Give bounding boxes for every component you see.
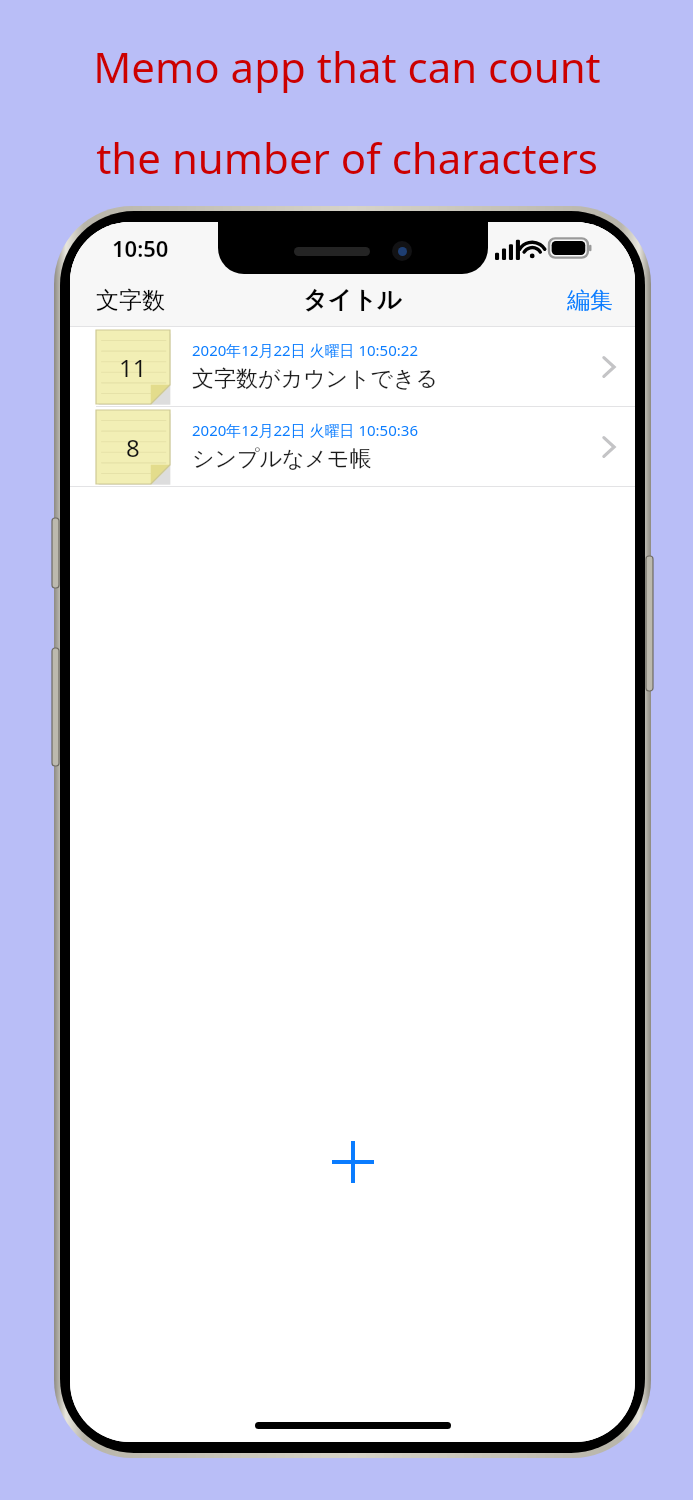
staticText: 11 bbox=[119, 351, 147, 384]
staticText: 2020年12月22日 火曜日 10:50:22 bbox=[192, 340, 418, 360]
staticText: 編集 bbox=[567, 286, 613, 315]
staticText: 10:50 bbox=[112, 233, 169, 263]
button[interactable]: 編集 bbox=[545, 278, 635, 323]
staticText: シンプルなメモ帳 bbox=[192, 445, 372, 473]
button[interactable]: Add memo bbox=[322, 1131, 384, 1193]
staticText: 8 bbox=[126, 431, 140, 464]
staticText: 文字数がカウントできる bbox=[192, 365, 439, 393]
staticText: the number of characters bbox=[96, 129, 598, 186]
button[interactable]: 8 bbox=[70, 407, 635, 486]
staticText: 2020年12月22日 火曜日 10:50:36 bbox=[192, 420, 418, 440]
staticText: タイトル bbox=[303, 285, 402, 315]
button[interactable]: 文字数 bbox=[70, 278, 191, 323]
button[interactable]: 11 bbox=[70, 327, 635, 406]
staticText: 文字数 bbox=[96, 286, 165, 315]
staticText: Memo app that can count bbox=[93, 38, 601, 95]
